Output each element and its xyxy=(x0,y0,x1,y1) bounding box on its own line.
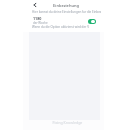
staticText: Einbeziehung xyxy=(31,3,101,8)
staticText: 1180 xyxy=(33,16,42,21)
button[interactable]: Back xyxy=(31,1,39,9)
staticText: Wenn du die Option aktivierst wird der V… xyxy=(32,25,89,29)
staticText: Hier kannst du deine Einstellungen fur d… xyxy=(32,10,101,14)
button[interactable]: Toggle setting xyxy=(88,19,96,24)
staticText: Fixing Knowledge xyxy=(32,120,103,125)
staticText: der Woche xyxy=(33,21,48,25)
